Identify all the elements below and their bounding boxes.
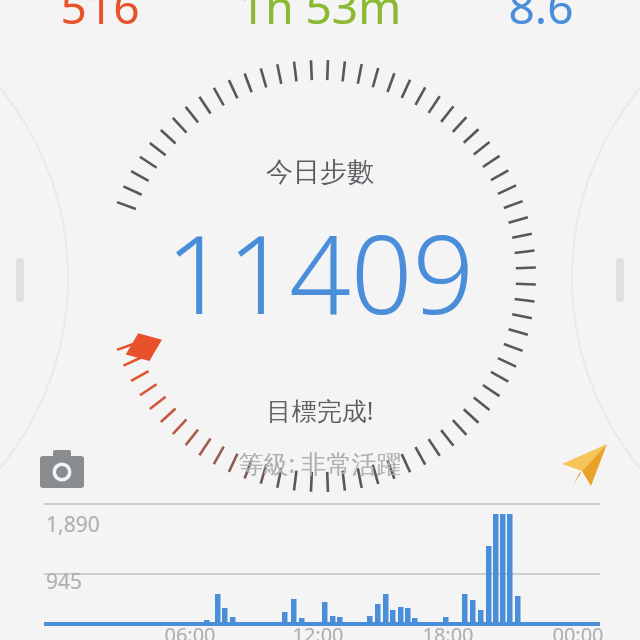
- staticText: 06:00: [130, 621, 250, 640]
- staticText: 12:00: [258, 621, 378, 640]
- staticText: 00:00: [518, 621, 638, 640]
- staticText: 945: [46, 567, 83, 596]
- staticText: 1,890: [46, 510, 100, 539]
- staticText: 等級: 非常活躍: [20, 446, 620, 480]
- staticText: 18:00: [388, 621, 508, 640]
- staticText: 1h 53m: [180, 0, 460, 38]
- staticText: 11409: [20, 199, 620, 346]
- staticText: 今日步數: [20, 155, 620, 189]
- button[interactable]: Share: [553, 436, 613, 496]
- staticText: 目標完成!: [20, 393, 620, 427]
- staticText: 516: [0, 0, 200, 38]
- button[interactable]: Camera: [34, 440, 90, 496]
- staticText: 8.6: [441, 0, 640, 38]
